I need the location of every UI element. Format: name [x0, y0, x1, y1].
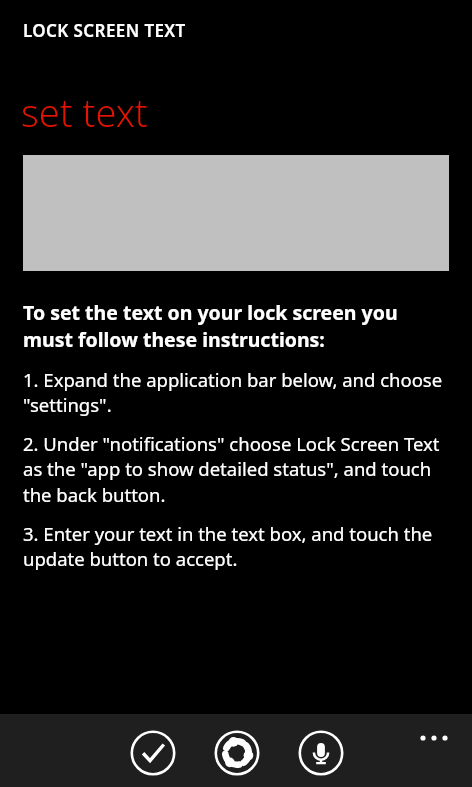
staticText: LOCK SCREEN TEXT: [23, 19, 186, 42]
button[interactable]: Speak: [298, 730, 344, 776]
button[interactable]: Share: [214, 730, 260, 776]
staticText: 1. Expand the application bar below, and…: [23, 367, 450, 418]
button[interactable]: More options: [412, 720, 456, 756]
staticText: set text: [21, 86, 148, 138]
staticText: To set the text on your lock screen you …: [23, 299, 448, 353]
button[interactable]: Accept: [130, 730, 176, 776]
staticText: 2. Under "notifications" choose Lock Scr…: [23, 431, 450, 508]
staticText: 3. Enter your text in the text box, and …: [23, 521, 450, 572]
